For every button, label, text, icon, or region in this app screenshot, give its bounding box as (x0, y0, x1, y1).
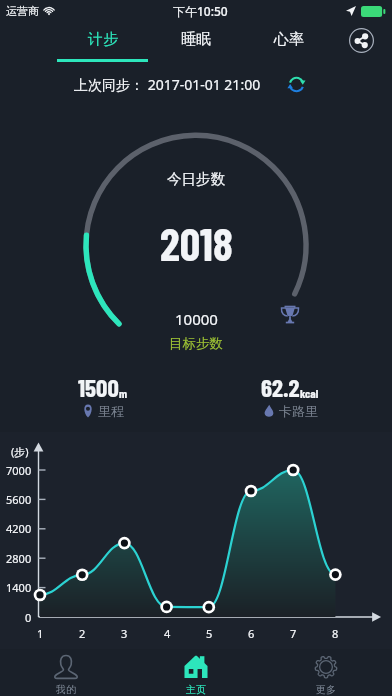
button[interactable]: 62.2 (230, 372, 350, 419)
button[interactable]: 我的 (36, 650, 96, 696)
staticText: 今日步数 (167, 170, 225, 188)
staticText: 运营商 (6, 4, 39, 18)
staticText: 下午10:50 (173, 3, 228, 19)
staticText: 计步 (88, 30, 118, 49)
staticText: 5600 (6, 492, 32, 507)
staticText: 2 (79, 626, 86, 641)
staticText: 1 (37, 626, 44, 641)
staticText: 62.2 (261, 372, 300, 402)
button[interactable]: 计步 (69, 22, 137, 57)
staticText: 7 (290, 626, 297, 641)
button[interactable]: 1500 (43, 372, 163, 419)
button[interactable]: Achievements (273, 297, 306, 330)
staticText: 8 (332, 626, 339, 641)
staticText: 睡眠 (181, 30, 211, 49)
staticText: 5 (206, 626, 213, 641)
staticText: 主页 (186, 683, 206, 696)
button[interactable]: Share (342, 21, 380, 59)
staticText: kcal (300, 386, 319, 400)
staticText: 心率 (274, 30, 304, 49)
staticText: (步) (11, 444, 29, 459)
button[interactable]: 主页 (166, 650, 226, 696)
button[interactable]: 更多 (296, 650, 356, 696)
staticText: 卡路里 (279, 403, 318, 419)
staticText: 4200 (6, 521, 32, 536)
staticText: 3 (121, 626, 128, 641)
staticText: 10000 (175, 309, 218, 329)
staticText: 4 (164, 626, 171, 641)
staticText: 我的 (56, 683, 76, 696)
button[interactable]: Sync (282, 70, 310, 98)
staticText: 2800 (6, 551, 32, 566)
staticText: 6 (248, 626, 255, 641)
staticText: 2018 (160, 216, 233, 270)
staticText: 0 (25, 610, 32, 625)
button[interactable]: 睡眠 (162, 22, 230, 57)
staticText: 1400 (6, 580, 32, 595)
staticText: m (119, 386, 128, 400)
staticText: 目标步数 (169, 335, 223, 352)
staticText: 更多 (316, 683, 336, 696)
staticText: 里程 (98, 403, 124, 419)
button[interactable]: 心率 (255, 22, 323, 57)
staticText: 1500 (78, 372, 119, 402)
staticText: 上次同步： 2017-01-01 21:00 (74, 75, 261, 94)
staticText: 7000 (6, 463, 32, 478)
